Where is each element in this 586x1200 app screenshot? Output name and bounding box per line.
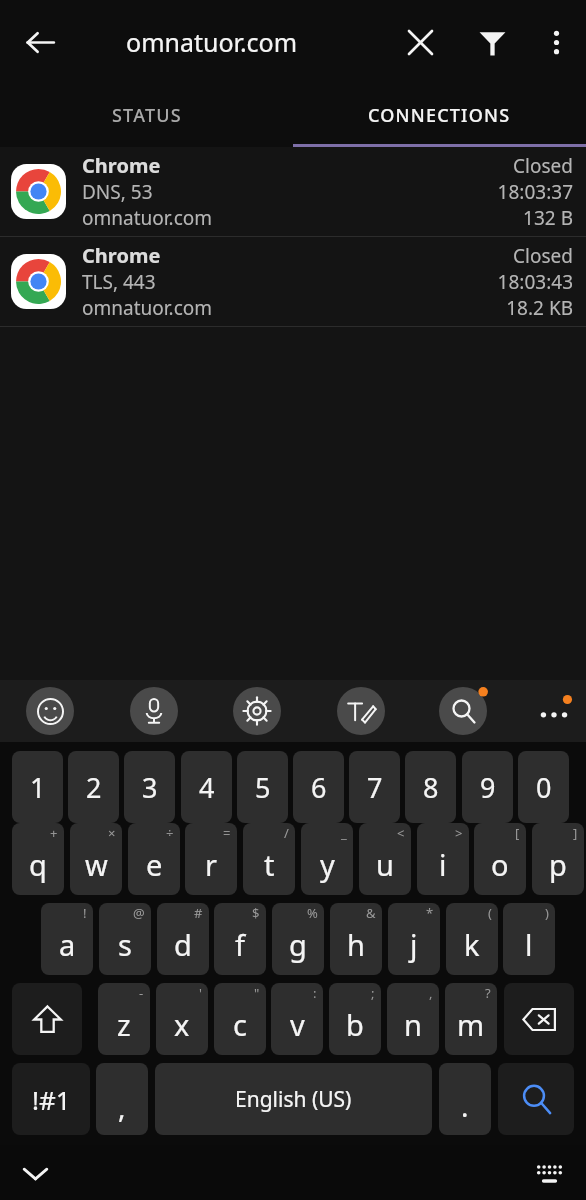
staticText: 0 bbox=[536, 769, 552, 806]
staticText: ' bbox=[199, 984, 202, 1002]
button[interactable]: t bbox=[243, 823, 295, 895]
button[interactable]: o bbox=[474, 823, 526, 895]
button[interactable]: z bbox=[98, 983, 150, 1055]
button[interactable]: i bbox=[417, 823, 469, 895]
button[interactable]: Emoji bbox=[26, 687, 74, 735]
staticText: ) bbox=[545, 904, 549, 922]
staticText: Closed bbox=[513, 243, 573, 269]
button[interactable]: Search bbox=[498, 1063, 574, 1135]
button[interactable]: Hide keyboard bbox=[12, 1150, 58, 1196]
staticText: z bbox=[117, 1005, 131, 1044]
staticText: 132 B bbox=[523, 205, 573, 231]
staticText: : bbox=[313, 984, 317, 1002]
staticText: % bbox=[307, 904, 318, 922]
button[interactable]: Settings bbox=[233, 687, 281, 735]
button[interactable]: p bbox=[532, 823, 584, 895]
button[interactable]: g bbox=[272, 903, 324, 975]
button[interactable]: Handwriting bbox=[337, 687, 385, 735]
staticText: 1 bbox=[30, 769, 46, 806]
button[interactable]: 0 bbox=[518, 751, 569, 823]
button[interactable]: m bbox=[445, 983, 497, 1055]
staticText: Closed bbox=[513, 153, 573, 179]
button[interactable]: Shift bbox=[12, 983, 82, 1055]
staticText: r bbox=[205, 845, 217, 884]
staticText: 7 bbox=[367, 769, 383, 806]
staticText: f bbox=[235, 925, 245, 964]
staticText: ( bbox=[488, 904, 492, 922]
staticText: DNS, 53 bbox=[82, 179, 153, 205]
button[interactable]: Comma bbox=[96, 1063, 148, 1135]
button[interactable]: y bbox=[301, 823, 353, 895]
button[interactable]: 5 bbox=[237, 751, 288, 823]
button[interactable]: Backspace bbox=[504, 983, 574, 1055]
staticText: h bbox=[347, 925, 365, 964]
button[interactable]: n bbox=[387, 983, 439, 1055]
button[interactable]: d bbox=[157, 903, 209, 975]
button[interactable]: Voice input bbox=[130, 687, 178, 735]
button[interactable]: 3 bbox=[124, 751, 175, 823]
staticText: 18:03:43 bbox=[497, 269, 573, 295]
button[interactable]: STATUS bbox=[0, 83, 293, 147]
button[interactable]: Symbols bbox=[12, 1063, 90, 1135]
button[interactable]: r bbox=[185, 823, 237, 895]
button[interactable]: 8 bbox=[405, 751, 456, 823]
button[interactable]: x bbox=[156, 983, 208, 1055]
button[interactable]: Filter bbox=[466, 16, 518, 68]
button[interactable]: Space, English (US) bbox=[155, 1063, 432, 1135]
staticText: ÷ bbox=[166, 824, 174, 842]
button[interactable]: j bbox=[388, 903, 440, 975]
button[interactable]: a bbox=[41, 903, 93, 975]
button[interactable]: l bbox=[503, 903, 555, 975]
staticText: 8 bbox=[423, 769, 439, 806]
button[interactable]: c bbox=[214, 983, 266, 1055]
staticText: ; bbox=[371, 984, 375, 1002]
button[interactable]: f bbox=[214, 903, 266, 975]
button[interactable]: 4 bbox=[181, 751, 232, 823]
staticText: . bbox=[461, 1087, 469, 1125]
button[interactable]: Switch keyboard bbox=[526, 1150, 572, 1196]
button[interactable]: w bbox=[70, 823, 122, 895]
button[interactable]: Chrome bbox=[0, 237, 586, 326]
staticText: 6 bbox=[311, 769, 327, 806]
staticText: d bbox=[174, 925, 192, 964]
button[interactable]: Period bbox=[439, 1063, 491, 1135]
staticText: ] bbox=[573, 824, 578, 842]
staticText: n bbox=[404, 1005, 422, 1044]
button[interactable]: More options bbox=[530, 16, 582, 68]
staticText: m bbox=[457, 1005, 485, 1044]
button[interactable]: Back bbox=[13, 15, 67, 69]
staticText: STATUS bbox=[112, 103, 182, 128]
staticText: # bbox=[194, 904, 203, 922]
staticText: 5 bbox=[255, 769, 271, 806]
button[interactable]: k bbox=[446, 903, 498, 975]
staticText: a bbox=[59, 925, 76, 964]
button[interactable]: Close bbox=[394, 16, 446, 68]
staticText: b bbox=[346, 1005, 364, 1044]
staticText: / bbox=[284, 824, 289, 842]
staticText: u bbox=[376, 845, 394, 884]
button[interactable]: s bbox=[99, 903, 151, 975]
button[interactable]: u bbox=[359, 823, 411, 895]
staticText: _ bbox=[341, 824, 347, 842]
button[interactable]: More keyboard options bbox=[530, 687, 578, 735]
staticText: TLS, 443 bbox=[82, 269, 156, 295]
staticText: omnatuor.com bbox=[82, 295, 213, 321]
button[interactable]: v bbox=[271, 983, 323, 1055]
button[interactable]: Chrome bbox=[0, 147, 586, 236]
button[interactable]: 6 bbox=[293, 751, 344, 823]
button[interactable]: 2 bbox=[68, 751, 119, 823]
staticText: 18.2 KB bbox=[506, 295, 573, 321]
button[interactable]: 7 bbox=[349, 751, 400, 823]
staticText: & bbox=[366, 904, 376, 922]
button[interactable]: Search bbox=[439, 687, 487, 735]
button[interactable]: 9 bbox=[462, 751, 513, 823]
button[interactable]: CONNECTIONS bbox=[293, 83, 586, 147]
button[interactable]: q bbox=[12, 823, 64, 895]
staticText: !#1 bbox=[32, 1082, 71, 1117]
button[interactable]: 1 bbox=[12, 751, 63, 823]
staticText: - bbox=[139, 984, 144, 1002]
button[interactable]: h bbox=[330, 903, 382, 975]
staticText: < bbox=[397, 824, 405, 842]
button[interactable]: e bbox=[128, 823, 180, 895]
button[interactable]: b bbox=[329, 983, 381, 1055]
